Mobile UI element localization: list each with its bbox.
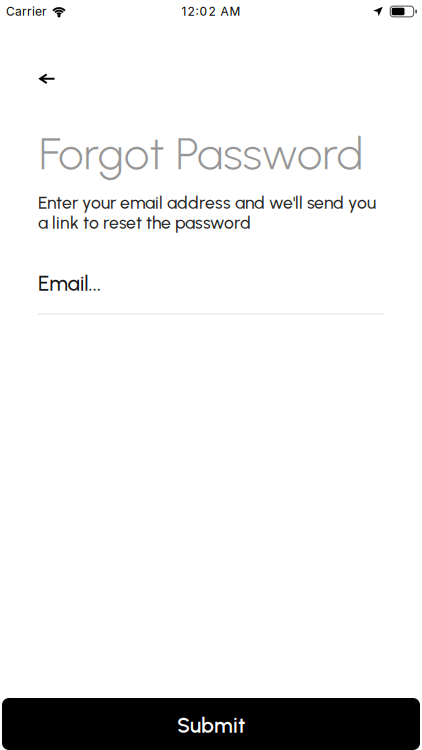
staticText: Submit (177, 713, 245, 738)
staticText: Forgot Password (39, 126, 363, 180)
button[interactable]: Back (31, 66, 62, 91)
staticText: Email... (38, 271, 101, 296)
staticText: Enter your email address and we'll send … (38, 192, 376, 233)
staticText: Carrier (6, 4, 47, 19)
staticText: 12:02 AM (181, 4, 240, 19)
button[interactable]: Submit (2, 698, 420, 750)
button[interactable]: Email (38, 271, 384, 315)
